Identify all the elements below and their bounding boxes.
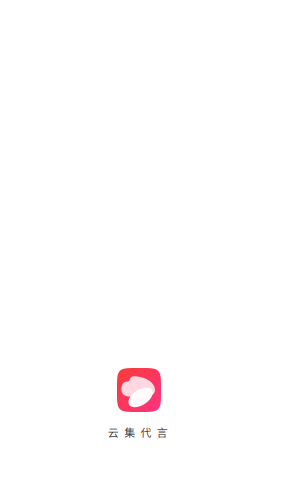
staticText: 集: [124, 424, 135, 440]
staticText: 云: [108, 424, 119, 440]
staticText: 代: [140, 424, 151, 440]
staticText: 言: [157, 424, 168, 440]
